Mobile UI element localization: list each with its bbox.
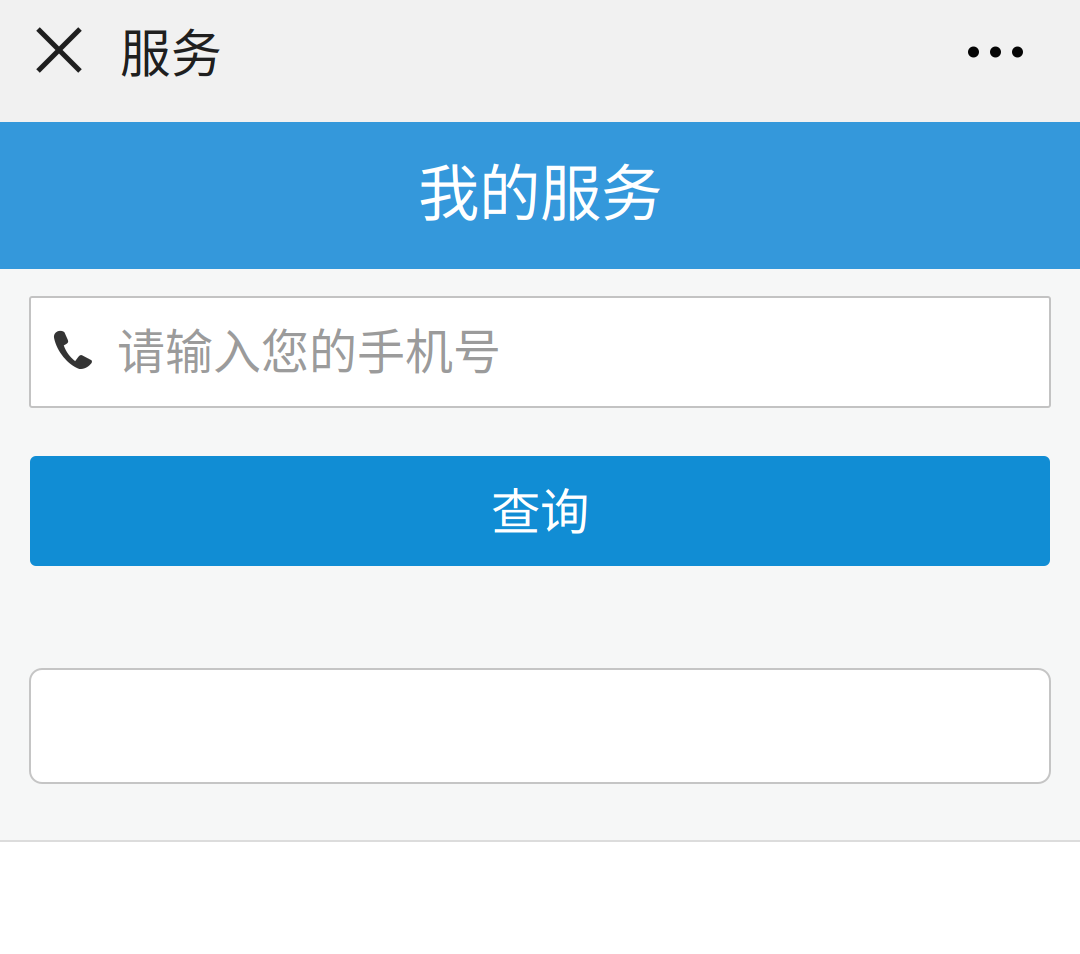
staticText: 请输入您的手机号 xyxy=(117,313,501,383)
staticText: 服务 xyxy=(120,13,222,87)
button[interactable]: 请输入您的手机号 xyxy=(30,297,1050,407)
staticText: 查询 xyxy=(491,472,589,544)
button[interactable]: More options xyxy=(913,0,1023,100)
button[interactable]: Close xyxy=(38,0,80,100)
button[interactable]: 查询 xyxy=(30,456,1050,566)
staticText: 我的服务 xyxy=(418,145,662,233)
